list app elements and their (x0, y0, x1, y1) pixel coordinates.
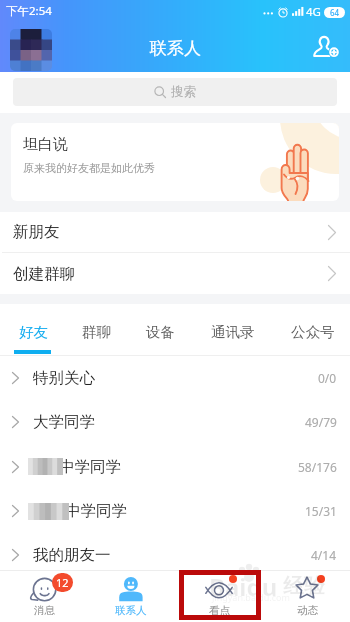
button[interactable]: 中学同学 (0, 444, 350, 489)
staticText: 中学同学 (59, 457, 121, 477)
staticText: 64 (330, 7, 340, 18)
button[interactable]: 中学同学 (0, 489, 350, 533)
button[interactable]: 设备 (135, 304, 185, 355)
staticText: 搜索 (171, 84, 196, 100)
button[interactable]: 特别关心 (0, 356, 350, 400)
staticText: 0/0 (318, 370, 337, 386)
staticText: 动态 (297, 604, 318, 617)
button[interactable]: 搜索 (13, 78, 337, 106)
staticText: 新朋友 (13, 222, 60, 242)
staticText: 看点 (209, 604, 230, 617)
button[interactable]: Add friend (306, 28, 344, 64)
button[interactable]: 我的朋友一 (0, 533, 350, 577)
button[interactable]: 动态 (267, 571, 347, 622)
staticText: Baidu (209, 570, 278, 603)
button[interactable]: 新朋友 (0, 212, 350, 252)
staticText: 联系人 (115, 604, 147, 617)
button[interactable]: 大学同学 (0, 400, 350, 444)
staticText: 15/31 (305, 503, 337, 519)
staticText: 我的朋友一 (33, 545, 111, 565)
staticText: 原来我的好友都是如此优秀 (23, 161, 155, 175)
staticText: 公众号 (291, 323, 335, 341)
staticText: 4/14 (311, 547, 337, 563)
staticText: 联系人 (150, 38, 201, 59)
staticText: 4G (306, 4, 321, 20)
button[interactable]: 好友 (8, 304, 58, 355)
staticText: 群聊 (82, 323, 111, 341)
button[interactable]: 公众号 (281, 304, 345, 355)
staticText: 12 (56, 575, 69, 590)
staticText: 通讯录 (211, 323, 255, 341)
staticText: 大学同学 (33, 412, 95, 432)
staticText: 经验 (283, 573, 325, 599)
button[interactable]: 坦白说 (11, 123, 339, 201)
staticText: 坦白说 (23, 135, 68, 154)
staticText: 创建群聊 (13, 264, 75, 284)
button[interactable]: 创建群聊 (0, 253, 350, 294)
button[interactable]: 看点 (179, 571, 259, 622)
staticText: 好友 (19, 323, 48, 341)
button[interactable]: Profile avatar (10, 29, 52, 71)
staticText: 49/79 (305, 414, 337, 430)
staticText: 58/176 (298, 459, 337, 475)
staticText: 消息 (34, 604, 55, 617)
button[interactable]: 联系人 (91, 571, 171, 622)
staticText: 设备 (146, 323, 175, 341)
staticText: 特别关心 (33, 368, 95, 388)
button[interactable]: 通讯录 (201, 304, 265, 355)
staticText: jingyan.baidu.com (212, 591, 290, 603)
button[interactable]: 消息 (4, 571, 84, 622)
staticText: 中学同学 (65, 501, 127, 521)
staticText: 下午2:54 (6, 3, 52, 19)
button[interactable]: 群聊 (71, 304, 121, 355)
